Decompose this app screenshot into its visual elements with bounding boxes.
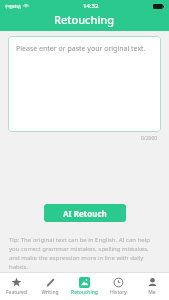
button[interactable]: Featured xyxy=(0,273,33,300)
button[interactable]: Writing xyxy=(33,273,67,300)
button[interactable]: Please enter or paste your original text… xyxy=(8,36,161,132)
other: History xyxy=(113,277,124,288)
button[interactable]: Me xyxy=(135,273,169,300)
other: Featured xyxy=(11,277,22,288)
staticText: History xyxy=(110,289,127,296)
staticText: Featured xyxy=(6,289,27,296)
button[interactable]: History xyxy=(101,273,135,300)
other: Me xyxy=(147,277,158,288)
staticText: 14:32 xyxy=(83,2,99,10)
staticText: Retouching xyxy=(54,12,115,27)
staticText: 0/2000 xyxy=(141,135,158,142)
staticText: Writing xyxy=(41,289,59,296)
staticText: Me xyxy=(148,289,156,296)
button[interactable]: AI Retouch xyxy=(44,204,126,222)
staticText: Please enter or paste your original text… xyxy=(16,44,146,54)
other: Retouching xyxy=(79,277,90,288)
staticText: Tip: The original text can be in English… xyxy=(9,236,160,271)
staticText: AI Retouch xyxy=(63,208,107,219)
staticText: 中国移动 xyxy=(5,4,21,9)
other: Writing xyxy=(45,277,56,288)
staticText: Retouching xyxy=(71,289,98,296)
button[interactable]: Retouching xyxy=(67,273,101,300)
